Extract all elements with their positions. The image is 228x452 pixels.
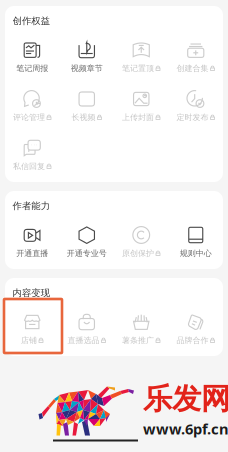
staticText: 开通专业号: [67, 248, 107, 258]
button[interactable]: 笔记周报: [5, 39, 59, 76]
staticText: 乐发网: [143, 381, 228, 417]
staticText: 定时发布: [176, 112, 208, 122]
staticText: 笔记周报: [16, 63, 48, 73]
staticText: 直播选品: [67, 335, 99, 345]
staticText: 店铺: [21, 335, 37, 345]
staticText: 私信回复: [13, 161, 45, 171]
button[interactable]: 品牌合作: [168, 311, 223, 348]
staticText: 笔记置顶: [122, 63, 154, 73]
button[interactable]: 薯条推广: [114, 311, 168, 348]
button[interactable]: 定时发布: [168, 88, 223, 125]
staticText: 评论管理: [13, 112, 45, 122]
staticText: 品牌合作: [176, 335, 208, 345]
button[interactable]: 开通专业号: [59, 224, 114, 261]
button[interactable]: 私信回复: [5, 137, 59, 174]
staticText: 长视频: [71, 112, 95, 122]
button[interactable]: 笔记置顶: [114, 39, 168, 76]
button[interactable]: 上传封面: [114, 88, 168, 125]
button[interactable]: 创建合集: [168, 39, 223, 76]
staticText: 创作权益: [12, 15, 50, 27]
staticText: 作者能力: [12, 200, 50, 212]
button[interactable]: 视频章节: [59, 39, 114, 76]
staticText: 规则中心: [180, 248, 212, 258]
button[interactable]: 店铺: [5, 311, 59, 348]
staticText: 上传封面: [122, 112, 154, 122]
button[interactable]: 评论管理: [5, 88, 59, 125]
staticText: 创建合集: [176, 63, 208, 73]
staticText: 薯条推广: [122, 335, 154, 345]
staticText: www.6pf.cn: [143, 419, 228, 438]
staticText: 开通直播: [16, 248, 48, 258]
button[interactable]: 原创保护: [114, 224, 168, 261]
button[interactable]: 规则中心: [168, 224, 223, 261]
button[interactable]: 开通直播: [5, 224, 59, 261]
staticText: 视频章节: [71, 63, 103, 73]
staticText: 内容变现: [12, 287, 50, 299]
button[interactable]: 直播选品: [59, 311, 114, 348]
button[interactable]: 长视频: [59, 88, 114, 125]
staticText: 原创保护: [122, 248, 154, 258]
